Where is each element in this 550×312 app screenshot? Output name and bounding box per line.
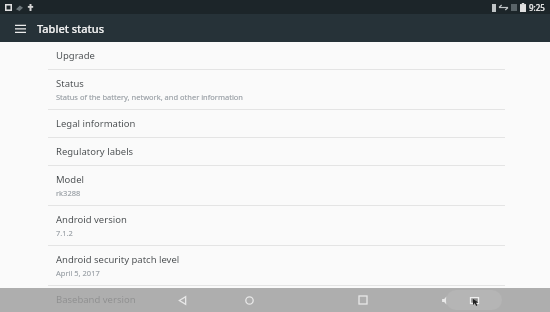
staticText: 9:25 (529, 2, 545, 13)
staticText: Status of the battery, network, and othe… (56, 92, 244, 102)
staticText: Upgrade (56, 49, 95, 62)
button[interactable]: Regulatory labels (0, 138, 550, 165)
button[interactable]: Model (0, 166, 550, 205)
button[interactable]: Baseband version (0, 286, 550, 312)
button[interactable]: Android version (0, 206, 550, 245)
staticText: Regulatory labels (56, 145, 134, 158)
staticText: Status (56, 77, 84, 90)
staticText: Legal information (56, 117, 136, 130)
staticText: rk3288 (56, 188, 81, 198)
button[interactable]: Back (165, 288, 199, 312)
button[interactable]: Volume (428, 288, 462, 312)
staticText: 7.1.2 (56, 228, 73, 238)
button[interactable]: Android security patch level (0, 246, 550, 285)
staticText: Baseband version (56, 293, 136, 305)
staticText: Model (56, 173, 85, 186)
staticText: April 5, 2017 (56, 268, 100, 278)
button[interactable]: Home (232, 288, 266, 312)
staticText: Tablet status (37, 21, 105, 36)
button[interactable]: Status (0, 70, 550, 109)
staticText: Android version (56, 213, 127, 226)
staticText: Android security patch level (56, 253, 180, 266)
button[interactable]: Upgrade (0, 42, 550, 69)
button[interactable]: Legal information (0, 110, 550, 137)
button[interactable]: Screenshot (446, 290, 502, 310)
button[interactable]: Recent apps (346, 288, 380, 312)
button[interactable]: Open navigation menu (9, 17, 31, 39)
